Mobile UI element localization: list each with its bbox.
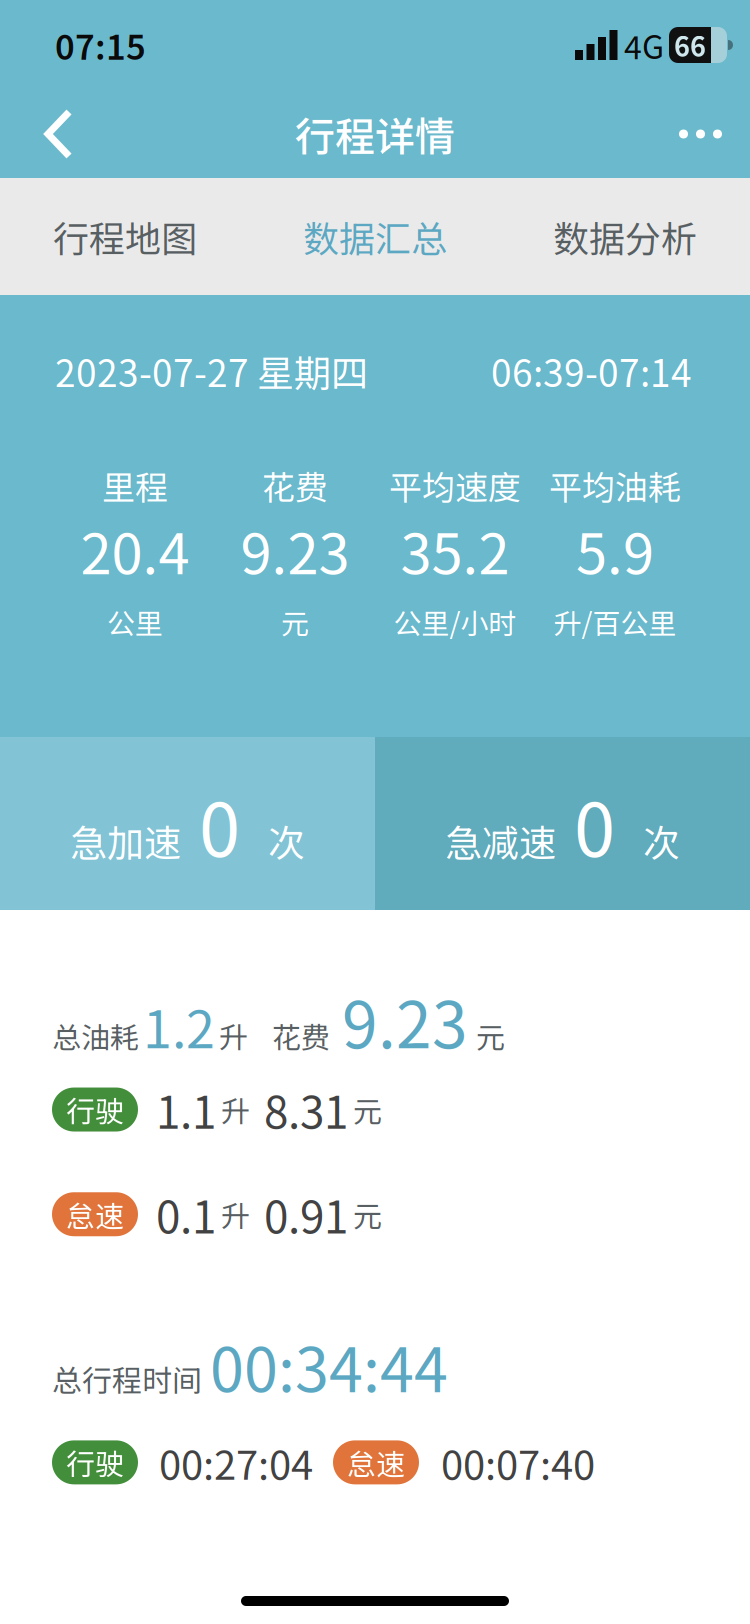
staticText: 次 (268, 814, 305, 867)
staticText: 怠速 (66, 1193, 124, 1235)
staticText: 00:07:40 (441, 1433, 595, 1491)
staticText: 花费 (272, 1015, 330, 1057)
staticText: 5.9 (576, 509, 654, 590)
staticText: 0 (199, 771, 240, 878)
staticText: 元 (476, 1015, 505, 1057)
staticText: 行程地图 (53, 210, 197, 262)
button[interactable]: More (659, 99, 750, 168)
staticText: 1.1 (156, 1078, 216, 1141)
staticText: 0 (574, 771, 615, 878)
staticText: 升 (221, 1088, 250, 1130)
staticText: 00:34:44 (210, 1321, 448, 1409)
staticText: 里程 (102, 462, 168, 509)
staticText: 公里/小时 (393, 601, 516, 642)
staticText: 2023-07-27 星期四 (55, 344, 368, 398)
staticText: 元 (281, 601, 309, 642)
staticText: 66 (674, 25, 706, 65)
staticText: 次 (643, 814, 680, 867)
staticText: 06:39-07:14 (491, 344, 692, 398)
button[interactable]: 数据汇总 (250, 178, 500, 295)
staticText: 行驶 (66, 1441, 124, 1483)
staticText: 9.23 (342, 974, 468, 1067)
button[interactable]: 数据分析 (500, 178, 750, 295)
staticText: 急加速 (70, 814, 181, 867)
staticText: 急减速 (445, 814, 556, 867)
staticText: 升 (219, 1015, 248, 1057)
staticText: 怠速 (347, 1441, 405, 1483)
staticText: 20.4 (80, 509, 189, 590)
staticText: 1.2 (143, 988, 215, 1063)
staticText: 4G (624, 22, 664, 68)
button[interactable]: Back (0, 91, 104, 177)
button[interactable]: 行程地图 (0, 178, 250, 295)
staticText: 花费 (262, 462, 328, 509)
staticText: 元 (353, 1193, 382, 1235)
staticText: 总行程时间 (52, 1357, 202, 1400)
staticText: 数据汇总 (303, 210, 447, 262)
staticText: 公里 (107, 601, 163, 642)
staticText: 数据分析 (553, 210, 697, 262)
staticText: 升/百公里 (553, 601, 676, 642)
staticText: 35.2 (400, 509, 509, 590)
staticText: 行程详情 (295, 105, 455, 163)
staticText: 9.23 (240, 509, 349, 590)
staticText: 行驶 (66, 1088, 124, 1130)
staticText: 07:15 (55, 20, 146, 70)
staticText: 0.91 (264, 1182, 348, 1246)
staticText: 00:27:04 (159, 1433, 313, 1491)
staticText: 元 (353, 1088, 382, 1130)
staticText: 平均速度 (389, 462, 521, 509)
staticText: 升 (221, 1193, 250, 1235)
staticText: 0.1 (156, 1182, 216, 1246)
staticText: 8.31 (264, 1078, 348, 1141)
staticText: 总油耗 (52, 1015, 139, 1057)
staticText: 平均油耗 (549, 462, 681, 509)
